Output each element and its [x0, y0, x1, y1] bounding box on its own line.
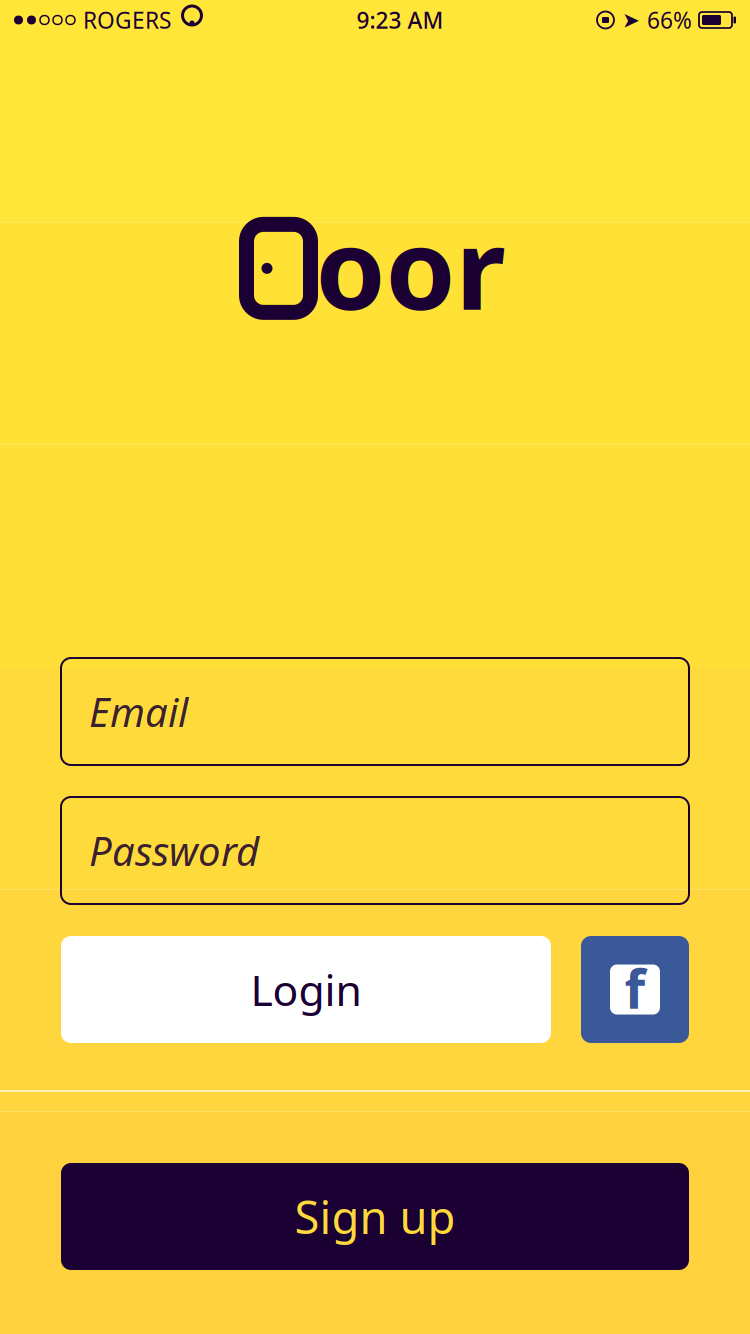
button[interactable]: Sign up: [61, 1163, 689, 1270]
staticText: 9:23 AM: [356, 5, 443, 35]
staticText: ROGERS: [83, 5, 171, 35]
staticText: oor: [315, 192, 505, 341]
staticText: 66%: [647, 5, 692, 35]
button[interactable]: Log in with Facebook: [581, 936, 689, 1043]
staticText: f: [624, 953, 645, 1023]
staticText: ➤: [622, 8, 640, 32]
button[interactable]: Login: [61, 936, 551, 1043]
staticText: Email: [89, 685, 188, 738]
staticText: Sign up: [294, 1186, 455, 1247]
staticText: Password: [89, 824, 259, 877]
staticText: Login: [250, 961, 361, 1018]
